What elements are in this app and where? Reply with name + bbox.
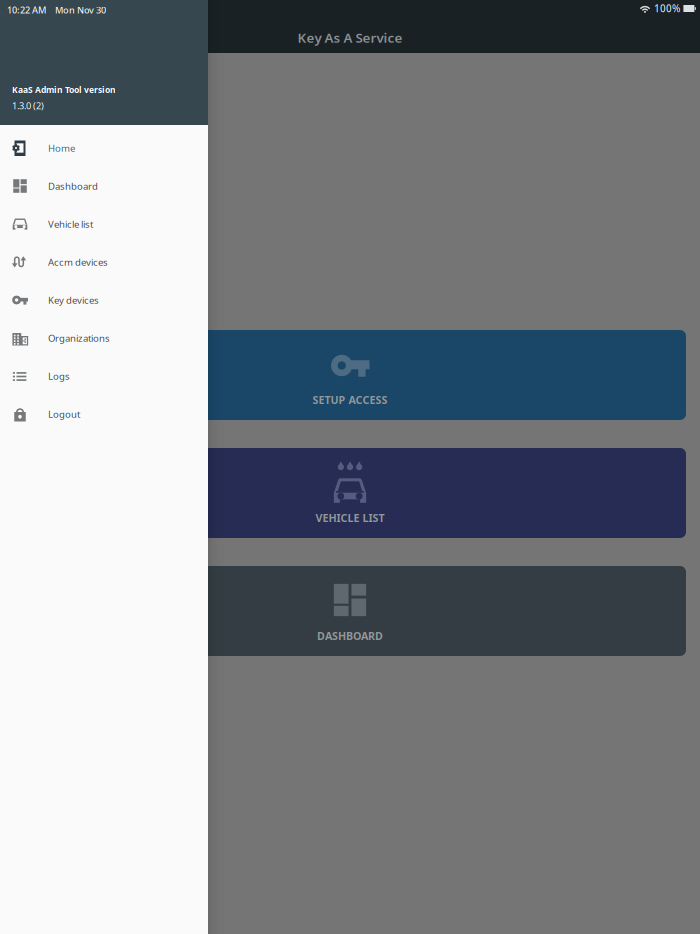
staticText: Organizations — [48, 331, 110, 345]
staticText: Logs — [48, 369, 70, 383]
staticText: Home — [48, 141, 75, 155]
button[interactable]: DASHBOARD — [14, 566, 686, 656]
staticText: 1.3.0 (2) — [12, 99, 44, 112]
staticText: DASHBOARD — [317, 628, 383, 643]
button[interactable]: Organizations — [0, 319, 208, 357]
staticText: Key As A Service — [297, 28, 402, 47]
button[interactable]: SETUP ACCESS — [14, 330, 686, 420]
button[interactable]: Logs — [0, 357, 208, 395]
staticText: Logout — [48, 407, 80, 421]
button[interactable]: Home — [0, 129, 208, 167]
button[interactable]: VEHICLE LIST — [14, 448, 686, 538]
button[interactable]: Key devices — [0, 281, 208, 319]
staticText: SETUP ACCESS — [312, 392, 387, 407]
staticText: VEHICLE LIST — [315, 510, 384, 525]
staticText: KaaS Admin Tool version — [12, 84, 116, 95]
staticText: 10:22 AM — [7, 4, 46, 16]
staticText: Key devices — [48, 293, 99, 307]
staticText: 100% — [654, 2, 680, 15]
staticText: Mon Nov 30 — [55, 4, 106, 16]
button[interactable]: Dashboard — [0, 167, 208, 205]
button[interactable]: Accm devices — [0, 243, 208, 281]
staticText: Vehicle list — [48, 217, 93, 231]
staticText: Accm devices — [48, 255, 108, 269]
staticText: Dashboard — [48, 179, 98, 193]
button[interactable]: Vehicle list — [0, 205, 208, 243]
button[interactable]: Logout — [0, 395, 208, 433]
